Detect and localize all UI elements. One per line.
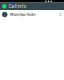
staticText: C (59, 12, 62, 17)
staticText: Call info (8, 3, 26, 9)
staticText: WhatsApp Audio (9, 12, 35, 17)
